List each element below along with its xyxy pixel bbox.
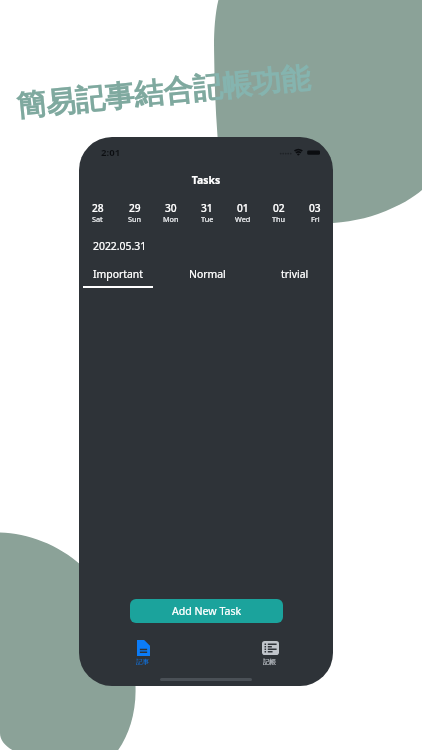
- staticText: Tasks: [79, 173, 333, 187]
- staticText: 記事: [136, 658, 150, 666]
- staticText: 28: [92, 201, 104, 215]
- staticText: Thu: [272, 214, 286, 224]
- button[interactable]: 30: [153, 201, 189, 226]
- button[interactable]: Add New Task: [130, 599, 283, 623]
- staticText: Sun: [128, 214, 142, 224]
- staticText: Fri: [311, 214, 320, 224]
- staticText: Wed: [235, 214, 251, 224]
- staticText: 2022.05.31: [93, 239, 147, 253]
- staticText: 2:01: [101, 146, 121, 159]
- staticText: 記帳: [263, 658, 277, 666]
- button[interactable]: Normal: [177, 267, 237, 281]
- button[interactable]: 01: [225, 201, 261, 226]
- button[interactable]: Ledger tab: [242, 637, 298, 671]
- button[interactable]: 28: [79, 201, 116, 226]
- button[interactable]: 29: [116, 201, 153, 226]
- staticText: Mon: [163, 214, 179, 224]
- staticText: 30: [165, 201, 177, 215]
- staticText: Normal: [189, 267, 226, 281]
- staticText: 01: [237, 201, 249, 215]
- staticText: Tue: [201, 214, 214, 224]
- button[interactable]: Important: [83, 267, 153, 288]
- staticText: trivial: [281, 267, 309, 281]
- staticText: Important: [93, 267, 143, 281]
- staticText: 02: [273, 201, 285, 215]
- button[interactable]: 02: [261, 201, 297, 226]
- staticText: 31: [201, 201, 213, 215]
- button[interactable]: trivial: [265, 267, 325, 281]
- button[interactable]: Notes tab: [115, 637, 171, 671]
- staticText: 簡易記事結合記帳功能: [15, 60, 312, 125]
- staticText: 簡易記事結合記帳功能: [15, 60, 312, 125]
- button[interactable]: 03: [297, 201, 333, 226]
- staticText: Sat: [92, 214, 103, 224]
- staticText: 29: [129, 201, 141, 215]
- button[interactable]: 31: [189, 201, 225, 226]
- staticText: Add New Task: [172, 604, 242, 618]
- staticText: 03: [309, 201, 321, 215]
